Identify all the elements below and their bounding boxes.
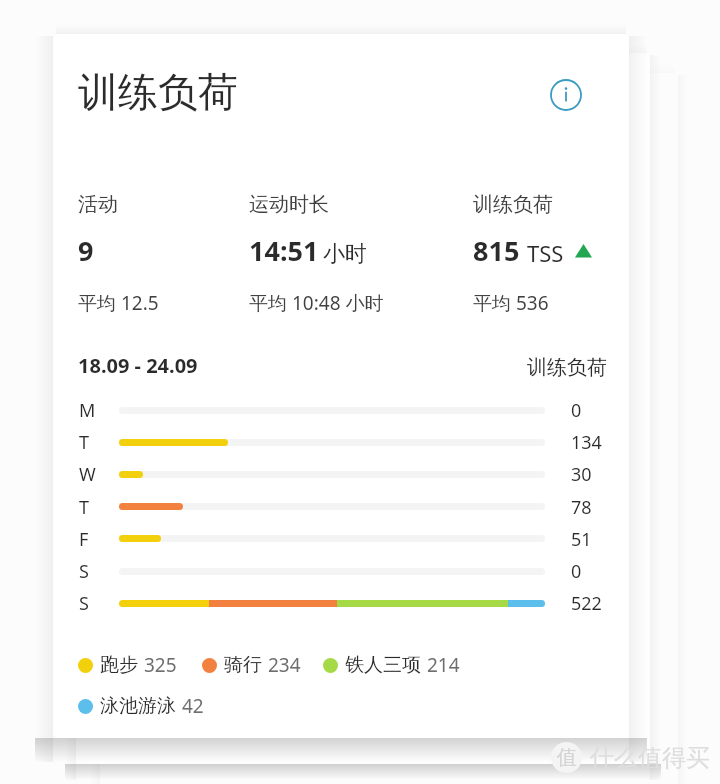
staticText: 泳池游泳 xyxy=(100,694,176,718)
button[interactable]: M 0 xyxy=(74,395,602,425)
button[interactable]: 骑行 xyxy=(202,652,301,678)
staticText: 78 xyxy=(571,495,592,520)
staticText: 训练负荷 xyxy=(473,192,553,217)
staticText: S xyxy=(79,591,89,616)
staticText: 骑行 xyxy=(224,653,262,677)
button[interactable]: Info xyxy=(547,76,584,113)
button[interactable]: 铁人三项 xyxy=(323,652,460,678)
staticText: 325 xyxy=(144,652,177,678)
staticText: TSS xyxy=(527,238,564,268)
staticText: 平均 10:48 小时 xyxy=(249,290,384,316)
staticText: 9 xyxy=(78,232,94,269)
staticText: 30 xyxy=(571,462,592,487)
staticText: 小时 xyxy=(323,240,367,268)
staticText: 522 xyxy=(571,591,602,616)
staticText: 815 xyxy=(473,232,520,269)
staticText: 234 xyxy=(268,652,301,678)
staticText: 铁人三项 xyxy=(345,653,421,677)
button[interactable]: 泳池游泳 xyxy=(78,693,204,719)
staticText: 运动时长 xyxy=(249,192,329,217)
staticText: T xyxy=(79,430,90,455)
staticText: 跑步 xyxy=(100,653,138,677)
staticText: 0 xyxy=(571,559,582,584)
staticText: 51 xyxy=(571,527,592,552)
staticText: 214 xyxy=(427,652,460,678)
staticText: 42 xyxy=(182,693,204,719)
button[interactable]: T 134 xyxy=(74,427,602,457)
staticText: W xyxy=(79,462,96,487)
staticText: 平均 536 xyxy=(473,290,549,316)
button[interactable]: S 522 xyxy=(74,588,602,618)
staticText: 18.09 - 24.09 xyxy=(78,352,198,379)
staticText: 值 xyxy=(557,745,577,770)
button[interactable]: S 0 xyxy=(74,556,602,586)
staticText: 训练负荷 xyxy=(78,67,238,117)
button[interactable]: T 78 xyxy=(74,492,602,522)
staticText: 14:51 xyxy=(249,232,319,269)
staticText: M xyxy=(79,398,96,423)
button[interactable]: W 30 xyxy=(74,459,602,489)
button[interactable]: 跑步 xyxy=(78,652,177,678)
staticText: 活动 xyxy=(78,192,118,217)
button[interactable]: F 51 xyxy=(74,524,602,554)
staticText: T xyxy=(79,495,90,520)
staticText: 134 xyxy=(571,430,602,455)
staticText: 什么值得买 xyxy=(590,743,710,773)
staticText: S xyxy=(79,559,89,584)
staticText: 平均 12.5 xyxy=(78,290,159,316)
staticText: 0 xyxy=(571,398,582,423)
staticText: F xyxy=(79,527,89,552)
staticText: 训练负荷 xyxy=(527,355,607,380)
